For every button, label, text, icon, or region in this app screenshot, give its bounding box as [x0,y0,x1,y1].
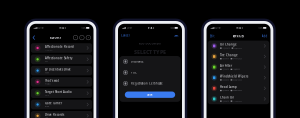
staticText: Carrier [126,27,132,29]
button[interactable]: Save [125,91,175,98]
staticText: Project [45,83,50,85]
staticText: Save [174,34,179,37]
button[interactable]: Air Filter [208,62,269,72]
staticText: 29 Dec 2022 [233,90,242,91]
button[interactable]: Action [79,35,84,40]
staticText: Windshield Wipers [220,75,248,78]
button[interactable]: EV Incentives Drive [31,66,92,75]
staticText: Unit [45,60,47,62]
staticText: 04 Nov 2023 [233,58,242,60]
button[interactable]: Affectionate Record [31,43,92,53]
button[interactable]: Gate Turner [31,100,92,109]
staticText: EV Incentives Drive [45,68,71,71]
staticText: Affectionate Safety [45,56,72,60]
button[interactable]: Edit [206,32,214,41]
staticText: Chain Oil [220,96,234,99]
button[interactable]: Tire Change [208,51,269,62]
button[interactable]: That's wat [31,77,92,87]
staticText: ADD DOCUMENT [138,42,161,45]
staticText: Draft [45,106,48,107]
button[interactable]: Save [174,32,182,39]
staticText: 9:41 [59,26,66,30]
staticText: Save [147,93,153,96]
button[interactable]: Back [29,34,37,42]
staticText: Insurance [131,60,144,63]
staticText: Program [45,49,52,51]
button[interactable]: Add [261,32,270,41]
staticText: Cancel [121,34,130,37]
staticText: Add [261,34,267,38]
staticText: 18 Jul 2023 [233,68,240,70]
staticText: Edit [209,34,214,38]
staticText: Carrier [215,27,221,29]
button[interactable]: Target Short Audio [31,88,92,98]
staticText: 9:41 [148,26,155,30]
staticText: Audit [45,72,48,74]
button[interactable]: Head Lamp [208,83,269,94]
staticText: 2019 [45,94,49,96]
staticText: Tire Change [220,53,238,57]
staticText: 11 Sep 2022 [233,100,242,102]
staticText: Air Filter [220,64,232,67]
staticText: SERVICES [232,34,243,38]
staticText: 100% [81,27,85,29]
button[interactable]: Registration Certificate [119,78,181,89]
staticText: 3,100 km [222,90,228,91]
staticText: Drive Records [45,113,64,116]
staticText: PUC [131,71,137,74]
staticText: Head Lamp [220,85,237,89]
staticText: Target Short Audio [45,90,72,94]
staticText: 20 Jan 2024 [234,47,242,49]
button[interactable]: Windshield Wipers [208,72,269,83]
button[interactable]: Insurance [119,56,181,67]
staticText: Registration Certificate [131,82,163,85]
staticText: Oil Change [220,43,237,46]
button[interactable]: Affectionate Safety [31,54,92,64]
button[interactable]: Cancel [118,32,130,39]
staticText: Gate Turner [45,102,62,105]
staticText: That's wat [45,79,59,82]
button[interactable]: Oil Change [208,41,269,51]
button[interactable]: Chain Oil [208,94,269,104]
staticText: 9,600 km [222,58,228,60]
staticText: ALBUMS [50,36,61,39]
staticText: 9:41 [236,26,243,30]
staticText: 100% [170,27,174,29]
button[interactable]: PUC [119,67,181,78]
staticText: 7,200 km [222,68,228,70]
staticText: 12,000 km [222,47,229,49]
staticText: Affectionate Record [45,45,74,49]
button[interactable]: Action [73,35,78,40]
staticText: Log [45,117,48,118]
staticText: 1,800 km [222,100,228,102]
button[interactable]: Action [86,35,91,40]
staticText: Carrier [38,27,44,29]
staticText: 100% [258,27,262,29]
staticText: SELECT TYPE [134,48,166,56]
button[interactable]: Drive Records [31,111,92,118]
